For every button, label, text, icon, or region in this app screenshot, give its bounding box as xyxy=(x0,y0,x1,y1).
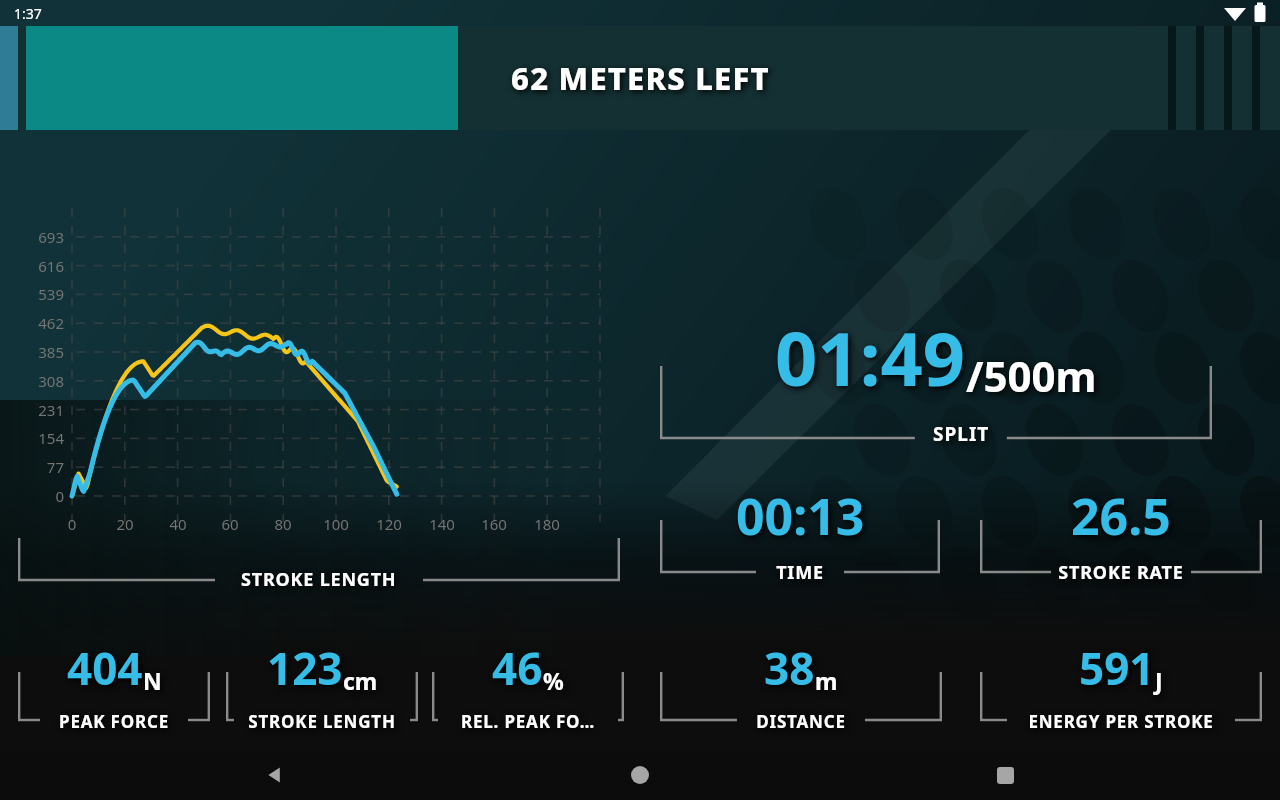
button[interactable]: Relative peak force xyxy=(432,622,624,742)
staticText: 0 xyxy=(52,514,92,534)
staticText: 693 xyxy=(12,227,64,247)
staticText: % xyxy=(543,665,564,696)
staticText: ENERGY PER STROKE xyxy=(1028,710,1214,733)
button[interactable]: Stroke length xyxy=(226,622,418,742)
staticText: TIME xyxy=(776,560,824,585)
staticText: cm xyxy=(343,665,378,696)
staticText: m xyxy=(815,665,838,696)
button[interactable]: Stroke length axis xyxy=(18,530,620,598)
staticText: /500m xyxy=(966,347,1097,404)
staticText: 38 xyxy=(764,638,815,698)
staticText: J xyxy=(1155,665,1163,696)
staticText: 80 xyxy=(263,514,303,534)
staticText: 120 xyxy=(369,514,409,534)
staticText: 40 xyxy=(158,514,198,534)
button[interactable]: Workout progress xyxy=(0,26,1280,130)
staticText: 231 xyxy=(12,400,64,420)
staticText: STROKE LENGTH xyxy=(248,710,396,733)
staticText: 404 xyxy=(67,638,143,698)
staticText: 62 METERS LEFT xyxy=(511,57,770,99)
button[interactable]: Back xyxy=(251,751,299,799)
staticText: 616 xyxy=(12,256,64,276)
staticText: SPLIT xyxy=(933,421,990,447)
staticText: 00:13 xyxy=(736,482,865,550)
staticText: 154 xyxy=(12,428,64,448)
staticText: 308 xyxy=(12,371,64,391)
staticText: 385 xyxy=(12,342,64,362)
staticText: 0 xyxy=(12,486,64,506)
button[interactable]: Recent apps xyxy=(981,751,1029,799)
staticText: PEAK FORCE xyxy=(59,710,169,733)
staticText: 77 xyxy=(12,457,64,477)
staticText: DISTANCE xyxy=(756,710,846,733)
staticText: 160 xyxy=(474,514,514,534)
staticText: 26.5 xyxy=(1071,482,1171,550)
staticText: 462 xyxy=(12,313,64,333)
staticText: 60 xyxy=(210,514,250,534)
staticText: REL. PEAK FO… xyxy=(461,710,595,733)
staticText: 591 xyxy=(1079,638,1155,698)
staticText: 20 xyxy=(105,514,145,534)
button[interactable]: Elapsed time xyxy=(660,470,940,598)
staticText: 1:37 xyxy=(14,4,42,23)
staticText: 46 xyxy=(492,638,543,698)
staticText: STROKE RATE xyxy=(1058,560,1184,585)
button[interactable]: Home xyxy=(616,751,664,799)
staticText: 01:49 xyxy=(775,307,966,408)
staticText: 140 xyxy=(422,514,462,534)
staticText: 539 xyxy=(12,284,64,304)
button[interactable]: Split pace xyxy=(660,300,1212,448)
staticText: 123 xyxy=(267,638,343,698)
staticText: STROKE LENGTH xyxy=(241,567,397,592)
button[interactable]: Force curve chart xyxy=(0,190,640,550)
staticText: 100 xyxy=(316,514,356,534)
button[interactable]: Peak force xyxy=(18,622,210,742)
button[interactable]: Stroke rate xyxy=(980,470,1262,598)
staticText: 180 xyxy=(527,514,567,534)
staticText: N xyxy=(143,665,162,696)
button[interactable]: Energy per stroke xyxy=(980,622,1262,742)
button[interactable]: Distance xyxy=(660,622,942,742)
